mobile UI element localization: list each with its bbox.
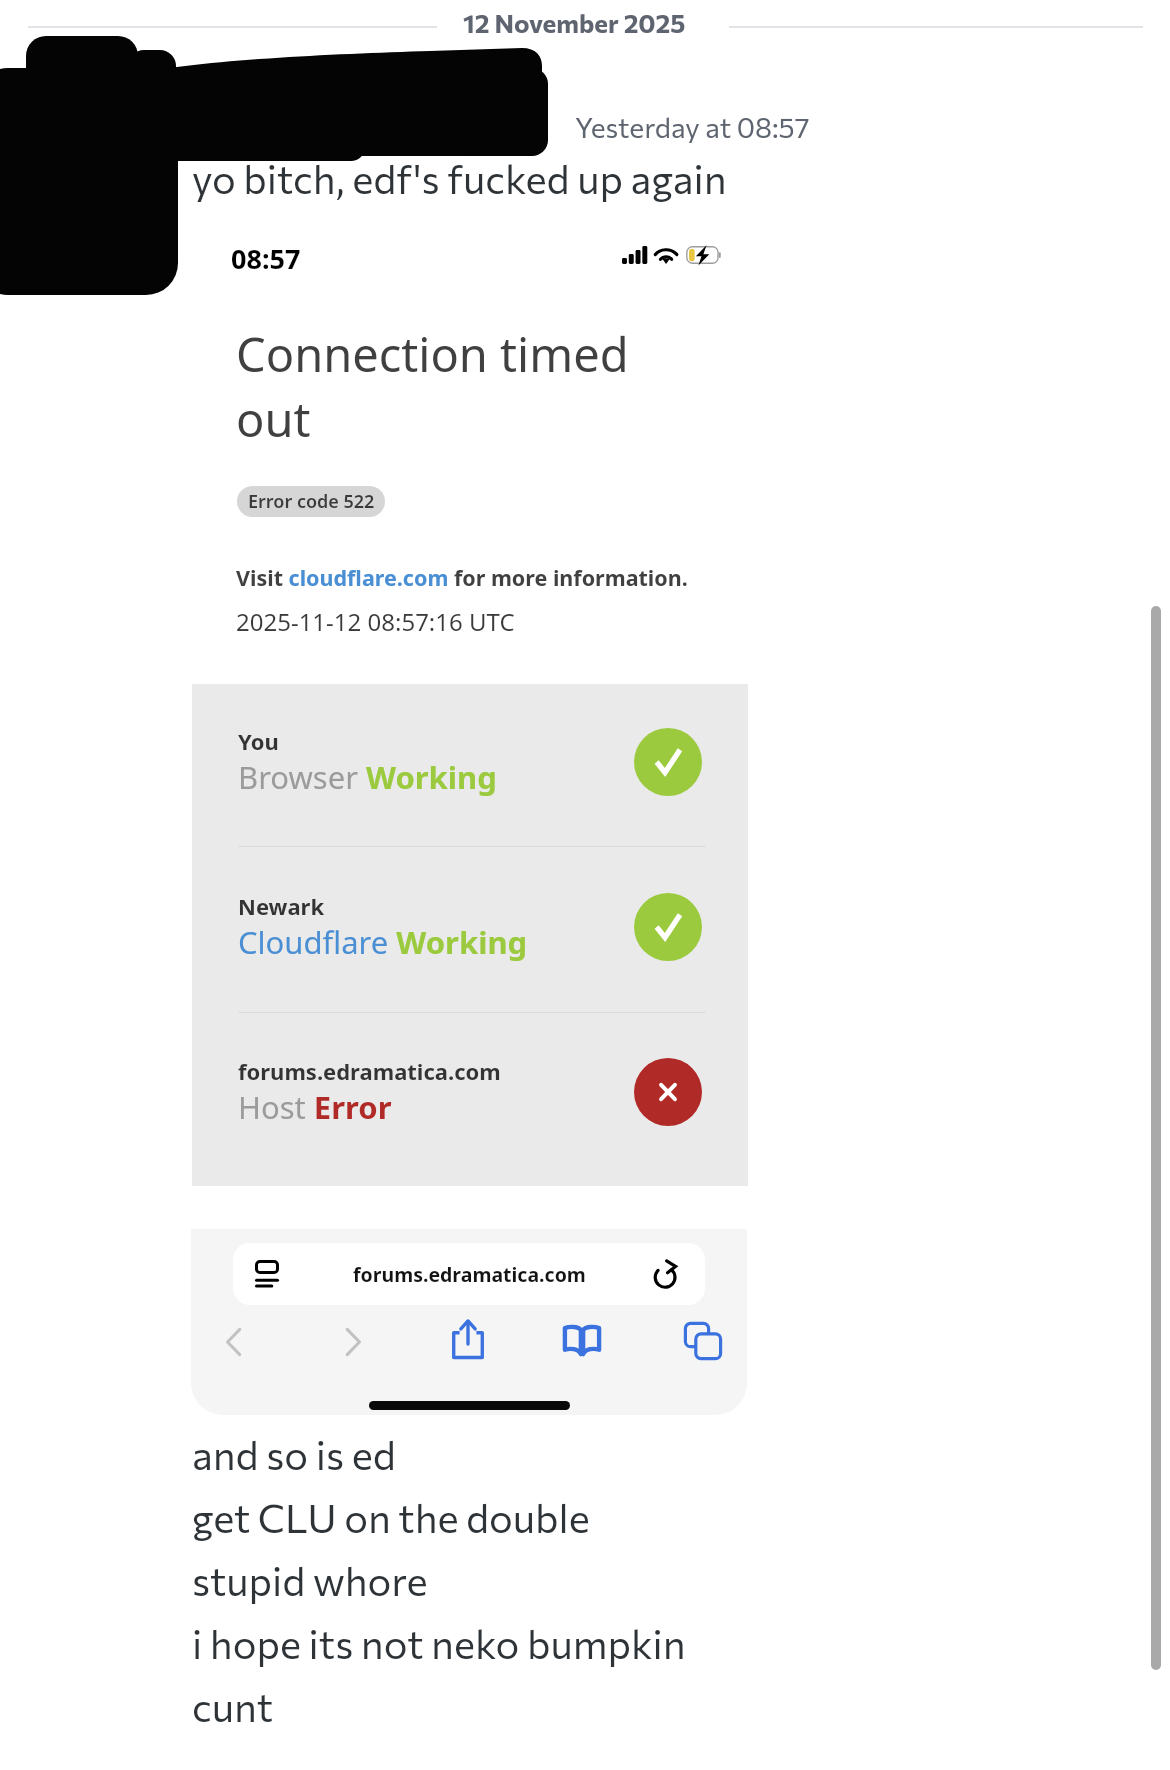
staticText: yo bitch, edf's fucked up again: [192, 154, 727, 203]
other: Working: [634, 728, 702, 796]
staticText: Error code 522: [248, 489, 375, 514]
other: Bookmarks: [563, 1325, 601, 1356]
staticText: 2025-11-12 08:57:16 UTC: [236, 605, 515, 638]
staticText: forums.edramatica.com: [353, 1261, 586, 1288]
other: Reader view: [255, 1260, 279, 1288]
other: Back: [216, 1324, 252, 1360]
staticText: i hope its not neko bumpkin: [192, 1619, 686, 1668]
staticText: Browser Working: [238, 756, 497, 798]
staticText: You: [238, 726, 279, 756]
button[interactable]: forums.edramatica.com: [233, 1243, 705, 1305]
other: Reload: [651, 1259, 681, 1289]
staticText: Newark: [238, 891, 325, 921]
staticText: and so is ed: [192, 1430, 396, 1479]
staticText: Host Error: [238, 1086, 392, 1128]
staticText: cunt: [192, 1682, 274, 1731]
staticText: 08:57: [231, 240, 301, 277]
other: Error: [634, 1058, 702, 1126]
other: Forward: [335, 1324, 371, 1360]
button[interactable]: Error code 522: [237, 486, 385, 517]
staticText: Visit cloudflare.com for more informatio…: [236, 563, 688, 592]
staticText: Yesterday at 08:57: [575, 110, 810, 144]
staticText: Connection timed out: [236, 322, 629, 451]
staticText: Cloudflare Working: [238, 921, 528, 963]
other: Working: [634, 893, 702, 961]
staticText: get CLU on the double: [192, 1493, 590, 1542]
other: Tabs: [683, 1321, 723, 1361]
other: Share: [447, 1318, 489, 1360]
staticText: stupid whore: [192, 1556, 428, 1605]
staticText: 12 November 2025: [463, 7, 686, 39]
staticText: forums.edramatica.com: [238, 1056, 501, 1086]
